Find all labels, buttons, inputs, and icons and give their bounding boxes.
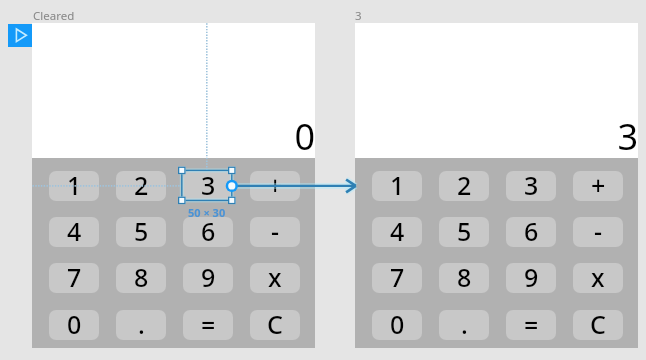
button[interactable]: 6	[506, 217, 556, 247]
button[interactable]: 0	[32, 112, 315, 157]
staticText: .	[138, 310, 145, 337]
staticText: C	[590, 310, 606, 337]
staticText: +	[268, 171, 283, 198]
staticText: 4	[390, 217, 405, 244]
button[interactable]: 9	[506, 263, 556, 293]
button[interactable]: Cleared	[33, 8, 75, 24]
staticText: 1	[390, 171, 405, 198]
button[interactable]: 1	[372, 171, 422, 201]
staticText: -	[271, 217, 280, 244]
staticText: 7	[390, 263, 405, 290]
staticText: 2	[134, 171, 149, 198]
button[interactable]: 2	[439, 171, 489, 201]
staticText: 6	[201, 217, 216, 244]
staticText: 4	[67, 217, 82, 244]
button[interactable]: 0	[49, 310, 99, 340]
staticText: 8	[457, 263, 472, 290]
button[interactable]: 4	[49, 217, 99, 247]
button[interactable]: C	[250, 310, 300, 340]
button[interactable]: -	[250, 217, 300, 247]
button[interactable]: x	[250, 263, 300, 293]
staticText: 50 × 30	[188, 205, 226, 220]
button[interactable]: 9	[183, 263, 233, 293]
button[interactable]: 6	[183, 217, 233, 247]
button[interactable]: 1	[49, 171, 99, 201]
staticText: 0	[67, 310, 82, 337]
button[interactable]: -	[573, 217, 623, 247]
staticText: x	[591, 263, 605, 290]
staticText: 2	[457, 171, 472, 198]
staticText: 5	[457, 217, 472, 244]
button[interactable]: +	[250, 171, 300, 201]
button[interactable]: +	[573, 171, 623, 201]
staticText: .	[461, 310, 468, 337]
staticText: 1	[67, 171, 82, 198]
staticText: 8	[134, 263, 149, 290]
staticText: +	[591, 171, 606, 198]
staticText: x	[268, 263, 282, 290]
staticText: C	[267, 310, 283, 337]
button[interactable]: C	[573, 310, 623, 340]
staticText: 3	[355, 8, 362, 24]
button[interactable]: 7	[49, 263, 99, 293]
staticText: =	[201, 310, 216, 337]
staticText: =	[524, 310, 539, 337]
staticText: 6	[524, 217, 539, 244]
button[interactable]: 8	[116, 263, 166, 293]
staticText: 5	[134, 217, 149, 244]
button[interactable]: 0	[372, 310, 422, 340]
staticText: 3	[524, 171, 539, 198]
button[interactable]: 3	[506, 171, 556, 201]
staticText: 9	[524, 263, 539, 290]
button[interactable]: x	[573, 263, 623, 293]
staticText: -	[594, 217, 603, 244]
button[interactable]: .	[116, 310, 166, 340]
button[interactable]: 5	[116, 217, 166, 247]
button[interactable]: .	[439, 310, 489, 340]
button[interactable]: Play prototype	[8, 24, 32, 47]
button[interactable]: 8	[439, 263, 489, 293]
button[interactable]: =	[183, 310, 233, 340]
button[interactable]: 4	[372, 217, 422, 247]
button[interactable]: =	[506, 310, 556, 340]
button[interactable]: 7	[372, 263, 422, 293]
button[interactable]: 2	[116, 171, 166, 201]
button[interactable]: 3	[183, 171, 233, 201]
staticText: Cleared	[33, 8, 75, 24]
button[interactable]: 3	[355, 8, 362, 24]
button[interactable]: 5	[439, 217, 489, 247]
staticText: 7	[67, 263, 82, 290]
staticText: 9	[201, 263, 216, 290]
button[interactable]: 3	[355, 112, 638, 157]
staticText: 3	[201, 171, 216, 198]
staticText: 0	[390, 310, 405, 337]
